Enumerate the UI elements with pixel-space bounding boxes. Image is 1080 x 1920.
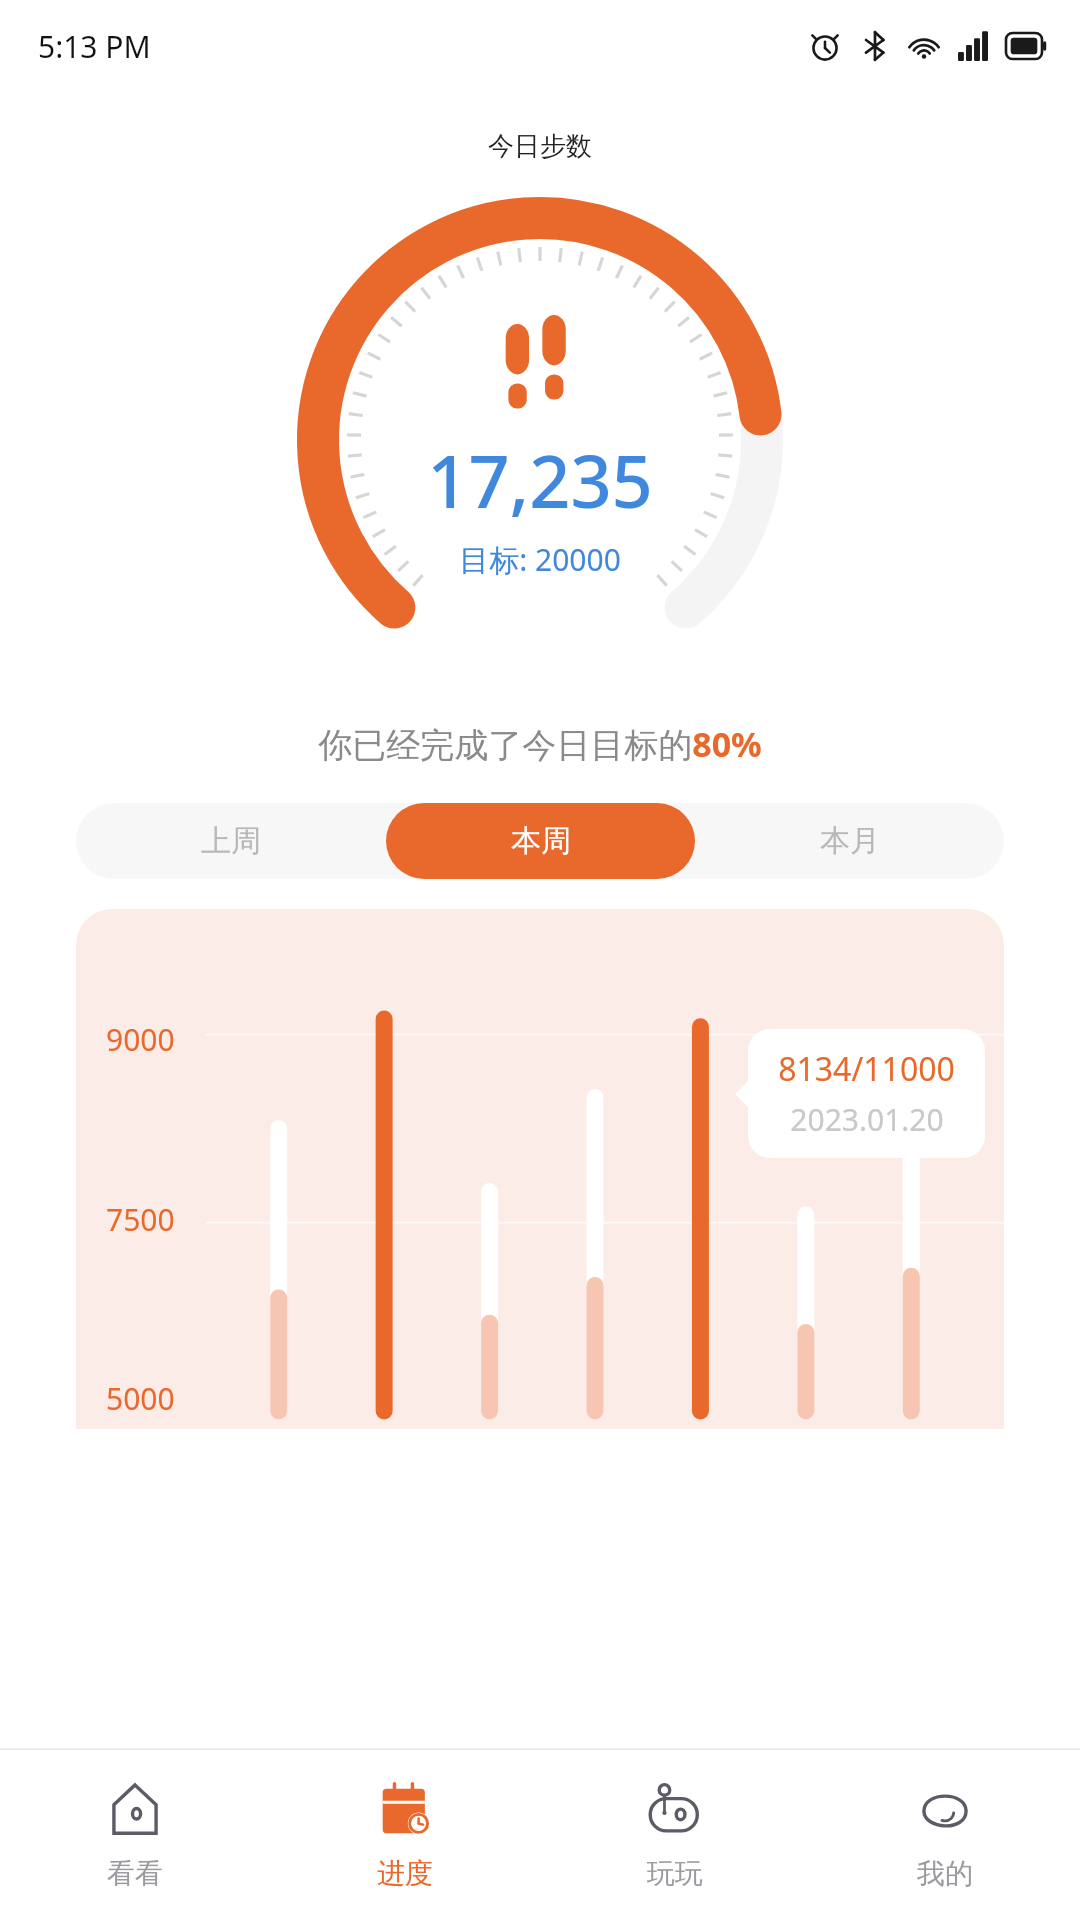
staticText: 9000 <box>106 1019 175 1060</box>
staticText: 你已经完成了今日目标的80% <box>0 721 1080 767</box>
staticText: 本周 <box>511 822 571 860</box>
staticText: 看看 <box>107 1856 163 1891</box>
staticText: 目标: 20000 <box>459 539 621 580</box>
staticText: 今日步数 <box>0 130 1080 163</box>
staticText: 进度 <box>377 1856 433 1891</box>
button[interactable]: 看看 <box>0 1750 270 1920</box>
staticText: 7500 <box>106 1199 175 1240</box>
staticText: 上周 <box>201 822 261 860</box>
staticText: 17,235 <box>427 431 653 529</box>
button[interactable]: 进度 <box>270 1750 540 1920</box>
staticText: 2023.01.20 <box>790 1099 944 1140</box>
staticText: 8134/11000 <box>778 1047 955 1091</box>
staticText: 5000 <box>106 1378 175 1419</box>
staticText: 本月 <box>820 822 880 860</box>
button[interactable]: 上周 <box>76 803 386 879</box>
button[interactable]: 玩玩 <box>540 1750 810 1920</box>
staticText: 我的 <box>917 1856 973 1891</box>
staticText: 玩玩 <box>647 1856 703 1891</box>
button[interactable]: 本月 <box>695 803 1004 879</box>
button[interactable]: 我的 <box>810 1750 1080 1920</box>
button[interactable]: 本周 <box>386 803 695 879</box>
staticText: 5:13 PM <box>38 26 151 67</box>
